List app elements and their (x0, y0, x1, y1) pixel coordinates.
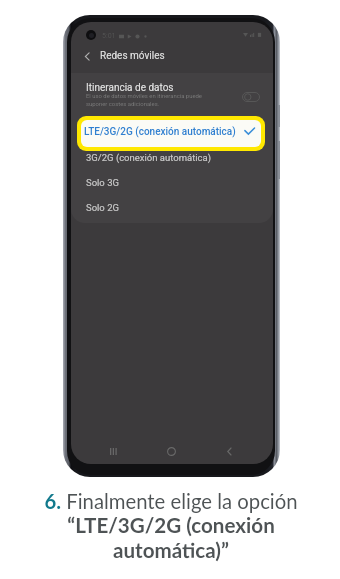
button[interactable]: Itinerancia de datos (71, 73, 273, 116)
staticText: Redes móviles (100, 50, 165, 62)
button[interactable]: 3G/2G (conexión automática) (71, 145, 273, 169)
button[interactable]: Solo 2G (71, 195, 273, 219)
staticText: “LTE/3G/2G (conexión automática)” (67, 513, 275, 563)
button[interactable]: Recents (105, 443, 121, 459)
staticText: El uso de datos móviles en itinerancia p… (86, 93, 202, 107)
staticText: Solo 3G (86, 177, 119, 188)
staticText: LTE/3G/2G (conexión automática) (84, 126, 236, 138)
button[interactable]: Solo 3G (71, 170, 273, 194)
button[interactable]: LTE/3G/2G (conexión automática) (81, 120, 261, 147)
button[interactable]: Back (221, 443, 237, 459)
staticText: Solo 2G (86, 202, 119, 213)
button[interactable]: Toggle data roaming (242, 92, 260, 102)
staticText: 5:01 (102, 32, 116, 40)
staticText: 3G/2G (conexión automática) (86, 152, 212, 163)
button[interactable]: Home (163, 443, 179, 459)
staticText: 6. Finalmente elige la opción (44, 489, 298, 513)
staticText: Itinerancia de datos (86, 82, 174, 94)
button[interactable]: Back (79, 48, 95, 64)
